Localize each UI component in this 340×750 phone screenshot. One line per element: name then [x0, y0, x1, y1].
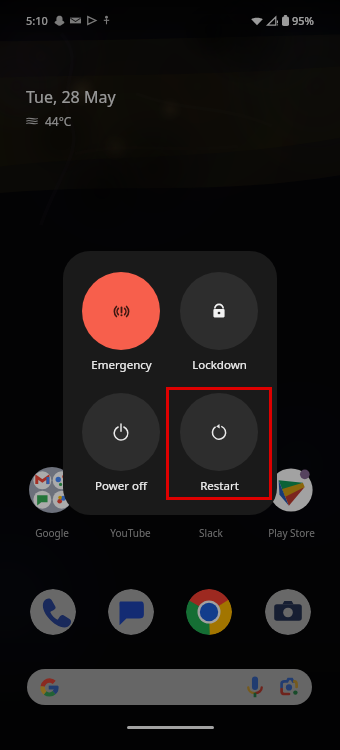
button[interactable]: Search [27, 669, 312, 705]
staticText: Restart [200, 478, 239, 494]
button[interactable]: Slack [172, 467, 250, 540]
button[interactable]: YouTube [91, 467, 169, 540]
staticText: YouTube [110, 526, 151, 540]
staticText: Play Store [268, 526, 315, 540]
button[interactable]: Power off [82, 393, 160, 494]
staticText: Tue, 28 May [26, 86, 116, 108]
button[interactable]: Camera [265, 589, 311, 635]
button[interactable]: Play Store [252, 467, 330, 540]
staticText: Slack [199, 526, 223, 540]
staticText: 5:10 [26, 13, 48, 28]
button[interactable]: Chrome [186, 589, 232, 635]
staticText: 95% [292, 13, 314, 28]
button[interactable]: Restart [180, 393, 258, 494]
button[interactable]: Lockdown [180, 272, 258, 373]
button[interactable]: Google [13, 467, 91, 540]
staticText: Emergency [91, 357, 152, 373]
staticText: Google [35, 526, 69, 540]
staticText: Lockdown [192, 357, 247, 373]
staticText: Power off [95, 478, 147, 494]
button[interactable]: Emergency [82, 272, 160, 373]
button[interactable]: Messages [108, 589, 154, 635]
staticText: 44°C [45, 113, 72, 129]
button[interactable]: Phone [30, 589, 76, 635]
